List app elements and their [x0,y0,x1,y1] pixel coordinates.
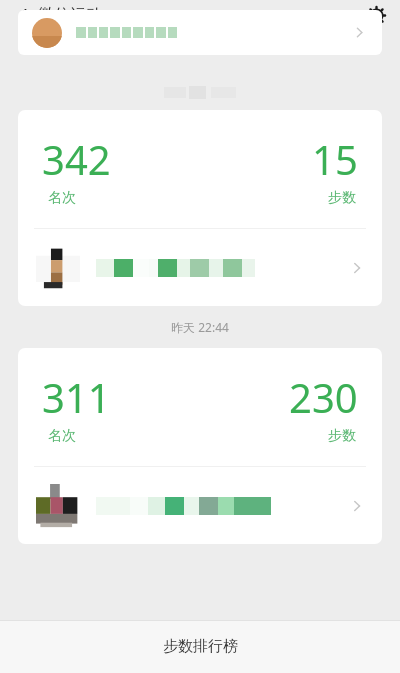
staticText: 名次 [48,427,76,445]
staticText: 步数 [328,189,356,207]
staticText: 名次 [48,189,76,207]
button[interactable]: 步数排行榜 [0,620,400,673]
staticText: 微信运动 [38,5,102,25]
button[interactable]: 342 [18,110,382,306]
staticText: 昨天 22:44 [171,319,229,335]
button[interactable] [18,10,382,55]
staticText: 15 [312,132,358,186]
staticText: 311 [42,370,111,424]
staticText: 步数 [328,427,356,445]
button[interactable]: Back [8,0,38,30]
staticText: 342 [42,132,111,186]
staticText: 230 [289,370,358,424]
button[interactable]: 311 [18,348,382,544]
staticText: 步数排行榜 [163,637,238,656]
button[interactable]: Settings [360,0,392,30]
